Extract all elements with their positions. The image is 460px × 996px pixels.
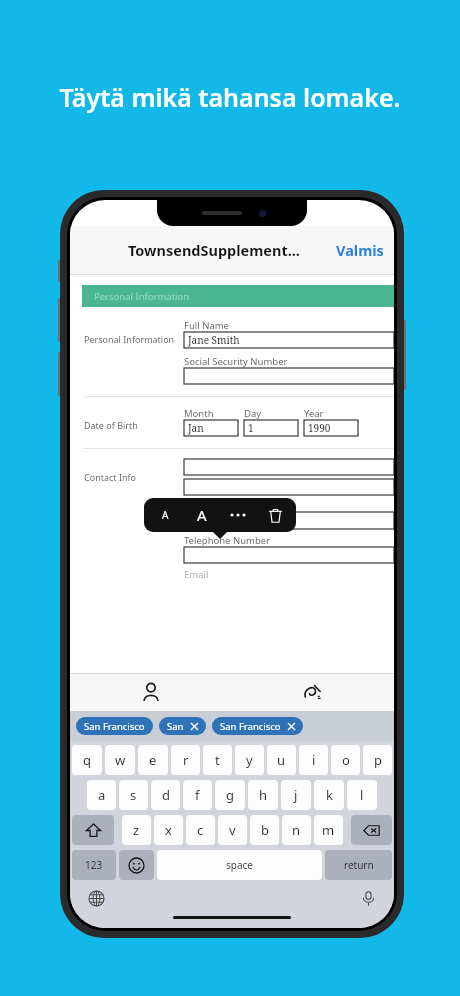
button[interactable]: Dictate: [354, 884, 382, 912]
button[interactable]: d: [151, 780, 180, 810]
button[interactable]: k: [314, 780, 344, 810]
staticText: n: [292, 821, 301, 839]
button[interactable]: z: [122, 815, 151, 845]
button[interactable]: More options: [223, 500, 253, 530]
button[interactable]: Jan: [184, 420, 238, 436]
button[interactable]: a: [87, 780, 116, 810]
button[interactable]: Contact autofill: [70, 673, 232, 711]
button[interactable]: o: [331, 745, 360, 775]
button[interactable]: Valmis: [326, 232, 394, 268]
staticText: h: [259, 786, 268, 804]
staticText: Jan: [188, 421, 204, 435]
staticText: Jane Smith: [188, 333, 240, 347]
button[interactable]: Shift: [72, 815, 114, 845]
staticText: Contact Info: [84, 471, 184, 483]
button[interactable]: Emoji: [119, 850, 154, 880]
staticText: j: [294, 786, 298, 804]
staticText: 1: [248, 421, 254, 435]
staticText: Full Name: [184, 319, 229, 332]
staticText: Email: [184, 568, 209, 581]
staticText: b: [261, 821, 269, 839]
button[interactable]: Backspace: [351, 815, 392, 845]
staticText: TownsendSupplement...: [128, 240, 300, 260]
button[interactable]: c: [186, 815, 215, 845]
staticText: x: [165, 821, 172, 839]
staticText: e: [149, 751, 157, 769]
button[interactable]: b: [250, 815, 279, 845]
button[interactable]: San: [184, 512, 394, 529]
staticText: space: [226, 858, 253, 872]
button[interactable]: e: [138, 745, 168, 775]
button[interactable]: Delete: [260, 500, 290, 530]
button[interactable]: r: [171, 745, 200, 775]
button[interactable]: 123: [72, 850, 116, 880]
button[interactable]: f: [183, 780, 212, 810]
staticText: p: [374, 751, 382, 769]
staticText: w: [115, 751, 126, 769]
staticText: a: [98, 786, 106, 804]
staticText: return: [344, 858, 374, 872]
staticText: Personal Information: [84, 333, 184, 345]
button[interactable]: 1990: [304, 420, 358, 436]
staticText: i: [312, 751, 316, 769]
staticText: Valmis: [336, 240, 384, 260]
button[interactable]: 1: [244, 420, 298, 436]
staticText: Year: [304, 407, 324, 420]
staticText: l: [360, 786, 364, 804]
button[interactable]: n: [282, 815, 311, 845]
staticText: o: [342, 751, 350, 769]
button[interactable]: San Francisco: [76, 717, 153, 735]
staticText: San Francisco: [84, 720, 145, 733]
button[interactable]: [184, 479, 394, 495]
button[interactable]: m: [314, 815, 343, 845]
staticText: San: [167, 720, 184, 733]
staticText: San Francisco: [220, 720, 281, 733]
button[interactable]: San: [159, 717, 206, 735]
staticText: Täytä mikä tahansa lomake.: [0, 80, 460, 114]
staticText: 123: [85, 858, 103, 872]
button[interactable]: t: [203, 745, 232, 775]
button[interactable]: San Francisco: [212, 717, 303, 735]
button[interactable]: y: [235, 745, 264, 775]
staticText: Month: [184, 407, 214, 420]
button[interactable]: g: [215, 780, 245, 810]
button[interactable]: space: [157, 850, 322, 880]
staticText: v: [229, 821, 236, 839]
button[interactable]: Signature: [232, 673, 394, 711]
staticText: r: [183, 751, 189, 769]
staticText: y: [246, 751, 253, 769]
staticText: t: [215, 751, 220, 769]
staticText: u: [277, 751, 286, 769]
staticText: A: [197, 505, 207, 525]
staticText: A: [162, 508, 169, 522]
button[interactable]: j: [281, 780, 311, 810]
staticText: Day: [244, 407, 262, 420]
staticText: m: [322, 821, 335, 839]
button[interactable]: return: [325, 850, 392, 880]
button[interactable]: s: [119, 780, 148, 810]
button[interactable]: Change keyboard: [82, 884, 110, 912]
staticText: Date of Birth: [84, 419, 184, 431]
staticText: s: [130, 786, 137, 804]
button[interactable]: l: [347, 780, 377, 810]
button[interactable]: [184, 368, 394, 384]
staticText: f: [195, 786, 200, 804]
button[interactable]: h: [248, 780, 278, 810]
button[interactable]: Increase text size: [187, 500, 217, 530]
button[interactable]: w: [105, 745, 135, 775]
button[interactable]: x: [154, 815, 183, 845]
staticText: z: [133, 821, 140, 839]
button[interactable]: p: [363, 745, 392, 775]
button[interactable]: q: [72, 745, 102, 775]
button[interactable]: Decrease text size: [150, 500, 180, 530]
staticText: Social Security Number: [184, 355, 288, 368]
button[interactable]: u: [267, 745, 296, 775]
button[interactable]: [184, 547, 394, 563]
button[interactable]: [184, 459, 394, 475]
button[interactable]: v: [218, 815, 247, 845]
button[interactable]: Jane Smith: [184, 332, 394, 348]
staticText: k: [326, 786, 333, 804]
staticText: d: [162, 786, 170, 804]
staticText: Telephone Number: [184, 534, 271, 547]
button[interactable]: i: [299, 745, 328, 775]
